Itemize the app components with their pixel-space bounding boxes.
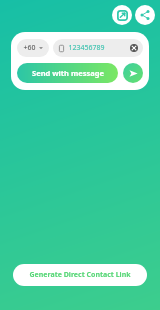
button[interactable]: Send [123,63,143,83]
staticText: Send with message [32,68,104,78]
staticText: +60 [23,43,36,53]
button[interactable]: Share [135,5,155,25]
staticText: Generate Direct Contact Link [29,270,131,280]
button[interactable]: Clear [130,44,138,52]
button[interactable]: Send with message [17,63,118,83]
button[interactable]: 123456789 [53,39,143,57]
staticText: 123456789 [68,43,105,53]
button[interactable]: +60 [17,39,49,57]
button[interactable]: Compose message [112,5,132,25]
button[interactable]: Generate Direct Contact Link [13,264,147,286]
